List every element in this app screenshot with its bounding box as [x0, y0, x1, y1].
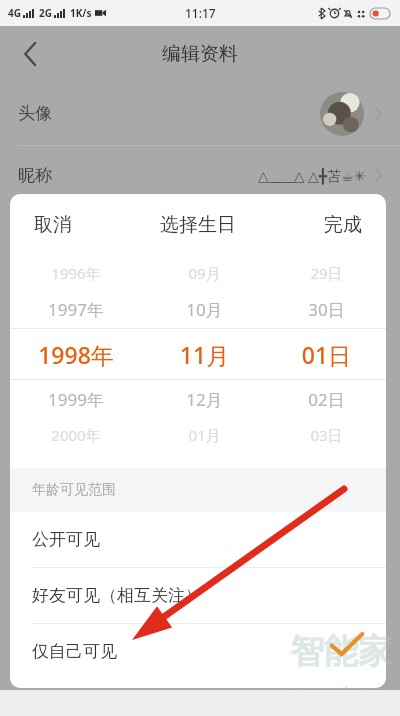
staticText: 01月 [142, 425, 267, 445]
staticText: 2G [39, 6, 52, 20]
staticText: 4G [8, 6, 21, 20]
staticText: 1999年 [10, 388, 142, 411]
staticText: www.znj.com [293, 682, 380, 700]
staticText: 1998年 [10, 339, 142, 370]
staticText: 年龄可见范围 [32, 481, 116, 499]
staticText: 公开可见 [32, 529, 100, 550]
staticText: 取消 [34, 213, 72, 237]
button[interactable]: 昵称 [0, 146, 400, 204]
staticText: △____△ △╋苫☕✳ [258, 166, 366, 185]
staticText: 29日 [267, 263, 386, 283]
staticText: 完成 [324, 213, 362, 237]
staticText: 1997年 [10, 298, 142, 321]
staticText: 10月 [142, 298, 267, 321]
staticText: 30日 [267, 298, 386, 321]
staticText: 好友可见（相互关注） [32, 585, 202, 606]
staticText: 昵称 [18, 165, 52, 186]
button[interactable]: 仅自己可见 [10, 624, 386, 679]
staticText: 12月 [142, 388, 267, 411]
staticText: 09月 [142, 263, 267, 283]
staticText: 仅自己可见 [32, 641, 117, 662]
staticText: 02日 [267, 388, 386, 411]
button[interactable]: 取消 [30, 209, 76, 241]
button[interactable]: 公开可见 [10, 512, 386, 567]
button[interactable]: 好友可见（相互关注） [10, 568, 386, 623]
staticText: 2000年 [10, 425, 142, 445]
button[interactable]: Back [6, 30, 54, 78]
staticText: 11:17 [185, 5, 216, 21]
staticText: 选择生日 [160, 213, 236, 237]
button[interactable]: 头像 [0, 82, 400, 145]
staticText: 1996年 [10, 263, 142, 283]
staticText: 03日 [267, 425, 386, 445]
staticText: 11月 [142, 339, 267, 370]
button[interactable]: 完成 [320, 209, 366, 241]
staticText: 01日 [267, 339, 386, 370]
staticText: 编辑资料 [162, 42, 238, 66]
staticText: 1K/s [70, 6, 92, 20]
staticText: 头像 [18, 103, 52, 124]
staticText: 智能家 [290, 630, 392, 673]
